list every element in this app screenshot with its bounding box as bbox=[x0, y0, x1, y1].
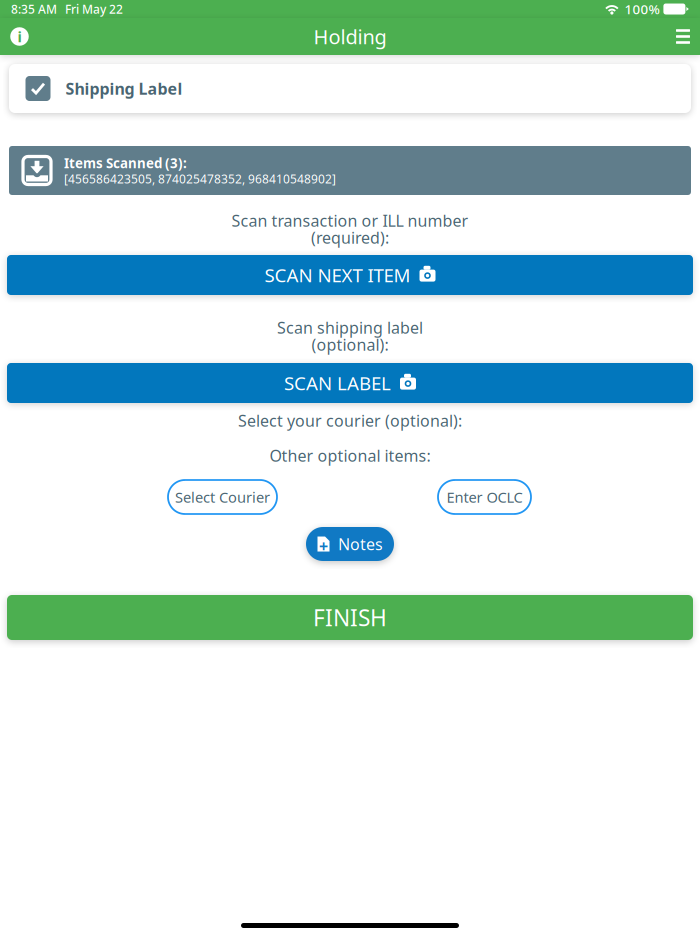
staticText: Scan transaction or ILL number bbox=[231, 210, 468, 231]
staticText: 100% bbox=[624, 0, 659, 18]
button[interactable]: Shipping Label bbox=[9, 64, 691, 113]
staticText: [456586423505, 874025478352, 96841054890… bbox=[64, 171, 336, 187]
staticText: (required): bbox=[311, 227, 389, 248]
button[interactable]: Select Courier bbox=[168, 480, 277, 514]
staticText: 8:35 AM bbox=[11, 1, 57, 17]
staticText: Holding bbox=[313, 23, 386, 50]
button[interactable]: FINISH bbox=[7, 595, 693, 640]
staticText: SCAN LABEL bbox=[284, 371, 391, 395]
staticText: Notes bbox=[338, 533, 383, 555]
staticText: Shipping Label bbox=[65, 78, 182, 99]
staticText: (optional): bbox=[311, 334, 388, 355]
staticText: + bbox=[319, 535, 328, 557]
staticText: SCAN NEXT ITEM bbox=[264, 263, 410, 287]
button[interactable]: SCAN NEXT ITEM bbox=[7, 255, 693, 295]
staticText: Enter OCLC bbox=[446, 487, 522, 507]
button[interactable]: Information bbox=[0, 18, 39, 55]
button[interactable]: Enter OCLC bbox=[438, 480, 531, 514]
button[interactable]: Menu bbox=[666, 18, 700, 55]
staticText: FINISH bbox=[313, 602, 387, 632]
staticText: i bbox=[17, 27, 21, 46]
staticText: Items Scanned (3): bbox=[64, 154, 187, 172]
staticText: Other optional items: bbox=[269, 445, 430, 466]
button[interactable]: + bbox=[306, 527, 394, 561]
staticText: Fri May 22 bbox=[65, 1, 123, 17]
staticText: Select your courier (optional): bbox=[238, 410, 462, 431]
button[interactable]: SCAN LABEL bbox=[7, 363, 693, 403]
staticText: Scan shipping label bbox=[277, 317, 423, 338]
staticText: Select Courier bbox=[175, 487, 270, 507]
